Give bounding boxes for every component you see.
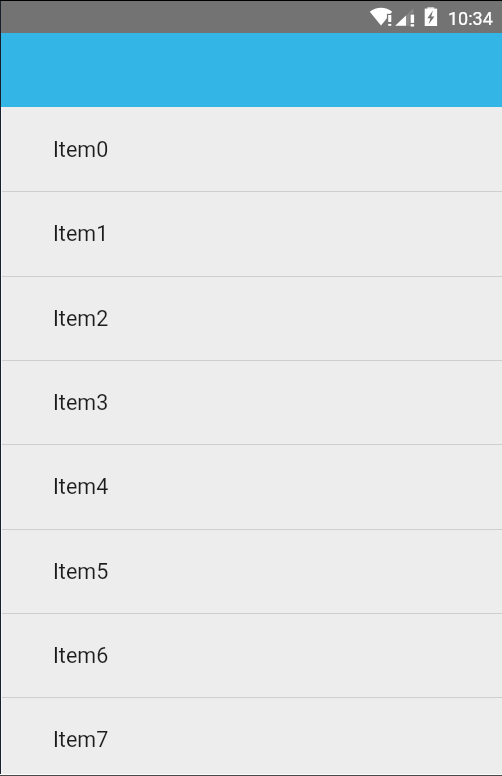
button[interactable]: Item3 — [0, 360, 502, 444]
button[interactable]: Item0 — [0, 107, 502, 191]
button[interactable]: Item4 — [0, 444, 502, 528]
button[interactable]: Item1 — [0, 191, 502, 275]
staticText: Item6 — [53, 643, 109, 668]
staticText: Item4 — [53, 474, 109, 499]
staticText: Item3 — [53, 390, 109, 415]
button[interactable]: Item5 — [0, 529, 502, 613]
other: Wi-Fi signal — [367, 5, 393, 27]
staticText: Item7 — [53, 727, 109, 752]
button[interactable]: Item2 — [0, 276, 502, 360]
staticText: Item5 — [53, 559, 109, 584]
button[interactable]: Item7 — [0, 697, 502, 776]
button[interactable]: Item6 — [0, 613, 502, 697]
other: Battery charging — [424, 7, 438, 27]
staticText: Item2 — [53, 306, 109, 331]
staticText: 10:34 — [448, 8, 493, 29]
other: Mobile signal — [394, 7, 416, 28]
staticText: Item0 — [53, 137, 109, 162]
staticText: Item1 — [53, 221, 109, 246]
